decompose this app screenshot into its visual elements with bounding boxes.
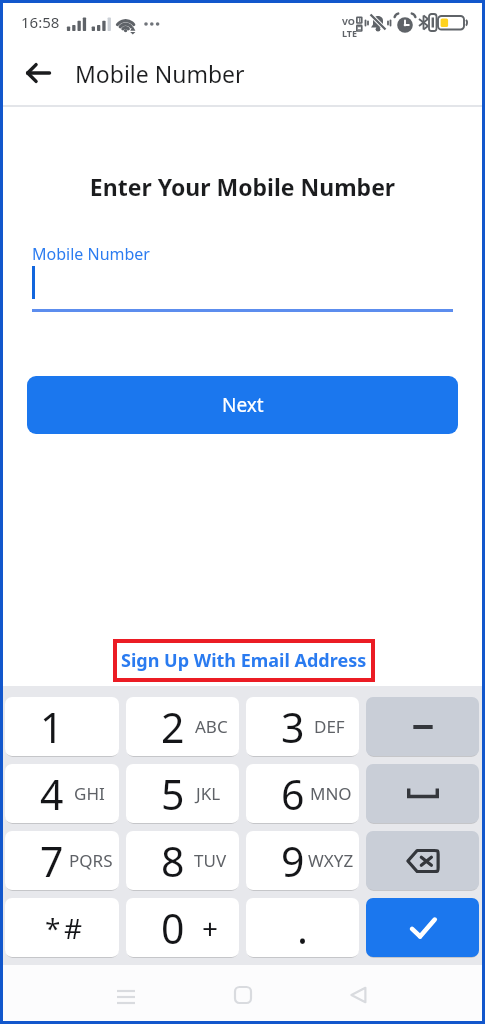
staticText: Mobile Number (32, 243, 150, 265)
button[interactable]: . (246, 898, 359, 957)
button[interactable]: Space (366, 764, 479, 823)
button[interactable]: 4 (5, 764, 119, 823)
staticText: ABC (195, 715, 228, 738)
staticText: 8 (161, 833, 185, 889)
button[interactable]: 6 (246, 764, 359, 823)
button[interactable]: Next (27, 376, 458, 434)
button[interactable]: 9 (246, 831, 359, 890)
button[interactable]: 0 (126, 898, 239, 957)
button[interactable]: 7 (5, 831, 119, 890)
staticText: JKL (196, 782, 221, 805)
staticText: GHI (74, 782, 105, 805)
button[interactable]: 2 (126, 697, 239, 756)
button[interactable]: Back (20, 55, 56, 91)
button[interactable]: * (5, 898, 119, 957)
staticText: 6 (281, 766, 305, 822)
staticText: Sign Up With Email Address (121, 648, 367, 673)
staticText: 0 (161, 900, 185, 956)
staticText: 3 (281, 699, 305, 755)
staticText: 9 (281, 833, 305, 889)
button[interactable]: Back (339, 975, 379, 1015)
staticText: 5 (161, 766, 185, 822)
button[interactable]: Dash (366, 697, 479, 756)
staticText: LTE (342, 27, 358, 39)
staticText: VO (342, 15, 355, 27)
button[interactable]: 5 (126, 764, 239, 823)
button[interactable]: 1 (5, 697, 119, 756)
button[interactable]: 3 (246, 697, 359, 756)
staticText: DEF (314, 715, 345, 738)
staticText: 4 (40, 766, 64, 822)
staticText: PQRS (69, 849, 113, 872)
button[interactable]: Home (223, 975, 263, 1015)
staticText: # (64, 909, 83, 947)
staticText: WXYZ (308, 849, 354, 872)
button[interactable]: 8 (126, 831, 239, 890)
staticText: Next (222, 392, 264, 418)
staticText: TUV (194, 849, 227, 872)
button[interactable]: Done (366, 898, 479, 957)
staticText: 2 (161, 699, 185, 755)
staticText: . (297, 900, 308, 956)
staticText: * (45, 909, 61, 947)
staticText: Mobile Number (75, 58, 245, 89)
staticText: MNO (310, 782, 352, 805)
button[interactable]: Backspace (366, 831, 479, 890)
staticText: Enter Your Mobile Number (0, 171, 485, 202)
button[interactable]: Sign Up With Email Address (113, 639, 375, 682)
staticText: + (202, 909, 219, 947)
staticText: 16:58 (21, 12, 60, 32)
button[interactable]: Recent apps (106, 975, 146, 1015)
staticText: 7 (40, 833, 64, 889)
staticText: 1 (40, 699, 64, 755)
